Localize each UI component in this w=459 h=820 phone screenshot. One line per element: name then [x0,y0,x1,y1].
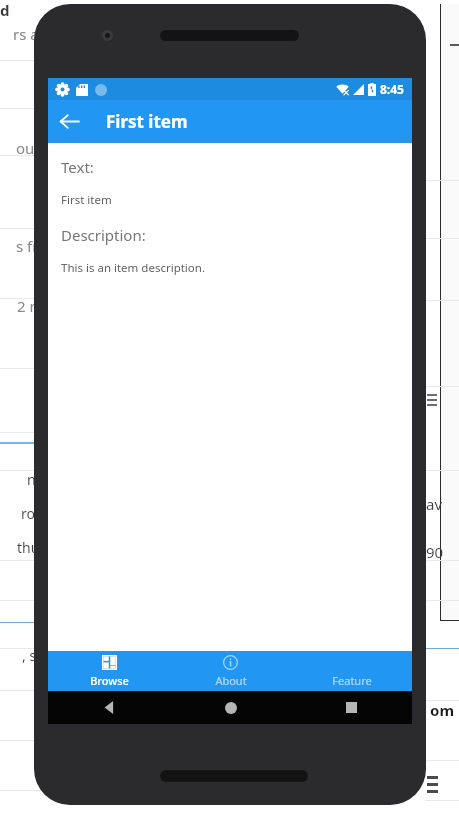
staticText: Description: [61,225,146,245]
staticText: thub [17,538,48,557]
staticText: 8:45 [380,81,404,97]
staticText: First item [106,110,188,133]
staticText: First item [61,192,112,208]
button[interactable]: About [170,651,291,691]
staticText: Text: [61,157,94,177]
staticText: Browse [90,673,129,688]
staticText: s fro [16,236,48,256]
staticText: This is an item description. [61,260,205,276]
staticText: ours [16,138,48,158]
button[interactable]: Back [48,691,170,724]
button[interactable]: Home [170,691,291,724]
staticText: d Shell in [0,0,48,20]
button[interactable]: Feature [291,651,412,691]
staticText: om [430,700,455,720]
button[interactable]: Navigate up [48,100,91,143]
staticText: About [215,673,247,688]
staticText: roid [21,504,48,523]
staticText: av [426,494,443,514]
staticText: , sel [22,646,48,665]
staticText: 2 mi [17,296,48,316]
staticText: rs ag [13,24,48,44]
button[interactable]: Browse [48,651,170,691]
staticText: n p [27,470,48,489]
staticText: Feature [332,673,372,688]
button[interactable]: Recent apps [291,691,412,724]
staticText: 90 [426,542,444,562]
